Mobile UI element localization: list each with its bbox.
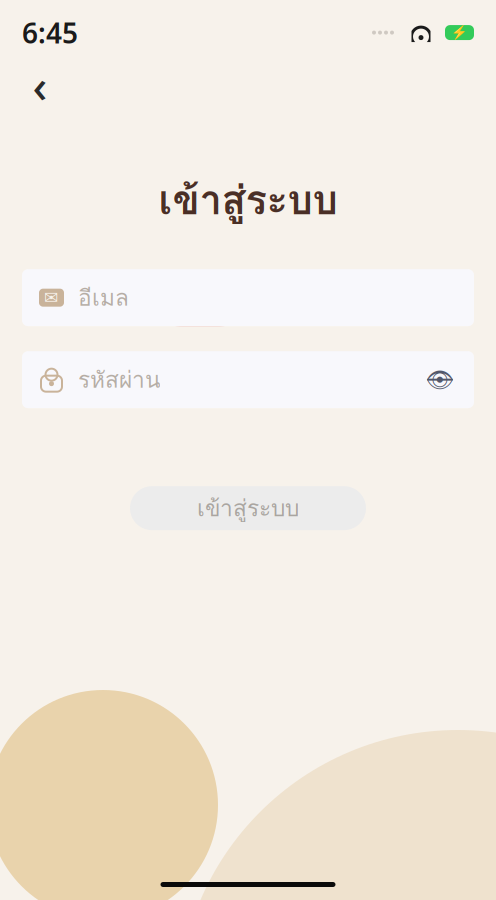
button[interactable]: Show password bbox=[423, 363, 457, 397]
button[interactable]: ✉ bbox=[22, 269, 474, 326]
staticText: รหัสผ่าน bbox=[78, 362, 160, 397]
staticText: ⚡ bbox=[451, 25, 468, 40]
staticText: ✉ bbox=[44, 288, 59, 307]
button[interactable]: รหัสผ่าน bbox=[39, 362, 409, 397]
staticText: ‹ bbox=[32, 55, 47, 115]
staticText: 👁 bbox=[425, 367, 454, 393]
button[interactable]: Back bbox=[18, 63, 62, 107]
staticText: เข้าสู่ระบบ bbox=[158, 169, 337, 231]
staticText: อีเมล bbox=[78, 280, 129, 315]
staticText: เข้าสู่ระบบ bbox=[197, 491, 299, 526]
button[interactable]: เข้าสู่ระบบ bbox=[130, 486, 366, 530]
staticText: 6:45 bbox=[22, 14, 78, 51]
